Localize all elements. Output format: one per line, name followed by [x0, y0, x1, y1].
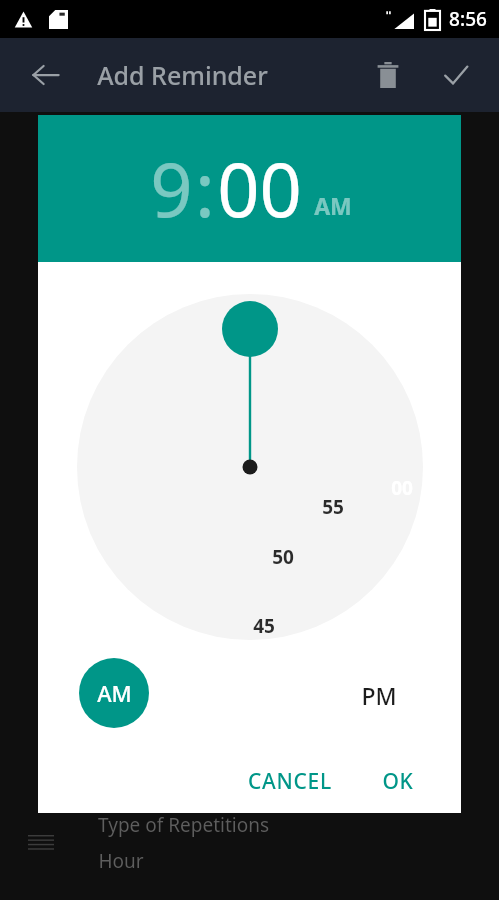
staticText: Hour	[98, 848, 144, 874]
staticText: :	[195, 138, 215, 239]
button[interactable]: Delete	[363, 50, 413, 100]
staticText: 9	[150, 138, 193, 239]
staticText: AM	[97, 678, 132, 708]
staticText: 45	[253, 613, 275, 639]
button[interactable]: AM	[79, 658, 149, 728]
staticText: 55	[322, 494, 344, 520]
staticText: OK	[382, 767, 414, 796]
button[interactable]: Back	[20, 49, 72, 101]
staticText: CANCEL	[248, 767, 332, 796]
button[interactable]: PM	[361, 680, 397, 711]
staticText: Type of Repetitions	[98, 812, 269, 838]
button[interactable]: AM	[314, 156, 352, 221]
staticText: 8:56	[449, 6, 487, 32]
button[interactable]: 9	[148, 138, 195, 239]
staticText: 00	[391, 475, 413, 501]
staticText: 00	[217, 138, 302, 239]
staticText: AM	[314, 190, 352, 221]
staticText: PM	[361, 680, 397, 711]
button[interactable]: Minute clock face	[77, 294, 423, 640]
staticText: Add Reminder	[97, 58, 268, 92]
button[interactable]: OK	[382, 767, 414, 796]
staticText: 50	[272, 544, 294, 570]
button[interactable]: 00	[215, 138, 304, 239]
button[interactable]: CANCEL	[248, 767, 332, 796]
button[interactable]: Save	[431, 50, 481, 100]
